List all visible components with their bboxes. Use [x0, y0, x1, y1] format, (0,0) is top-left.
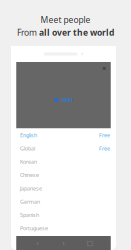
staticText: ‹: [36, 239, 38, 247]
button[interactable]: Global: [11, 142, 116, 155]
button[interactable]: Spanish: [11, 208, 116, 222]
staticText: Free: [99, 132, 110, 139]
staticText: Global: [20, 145, 35, 152]
staticText: English: [20, 132, 37, 139]
button[interactable]: Japanese: [11, 182, 116, 195]
staticText: Free: [99, 145, 110, 152]
staticText: Portuguese: [20, 225, 48, 232]
staticText: ›: [62, 239, 64, 247]
staticText: Chinese: [20, 171, 39, 179]
staticText: 1000: [60, 96, 72, 103]
staticText: □: [87, 239, 93, 247]
staticText: From: [17, 27, 37, 38]
staticText: Japanese: [20, 185, 42, 192]
staticText: Spanish: [20, 211, 39, 218]
staticText: ×: [102, 64, 106, 73]
button[interactable]: Back: [32, 238, 42, 248]
button[interactable]: Forward: [58, 238, 68, 248]
button[interactable]: German: [11, 195, 116, 208]
staticText: all over the world: [39, 27, 114, 38]
staticText: German: [20, 198, 40, 205]
button[interactable]: Close: [100, 64, 108, 72]
staticText: Meet people: [40, 14, 90, 25]
button[interactable]: English: [11, 128, 116, 142]
button[interactable]: Korean: [11, 155, 116, 168]
button[interactable]: Tabs: [85, 238, 95, 248]
button[interactable]: Portuguese: [11, 222, 116, 235]
button[interactable]: Chinese: [11, 168, 116, 182]
staticText: Korean: [20, 158, 37, 165]
